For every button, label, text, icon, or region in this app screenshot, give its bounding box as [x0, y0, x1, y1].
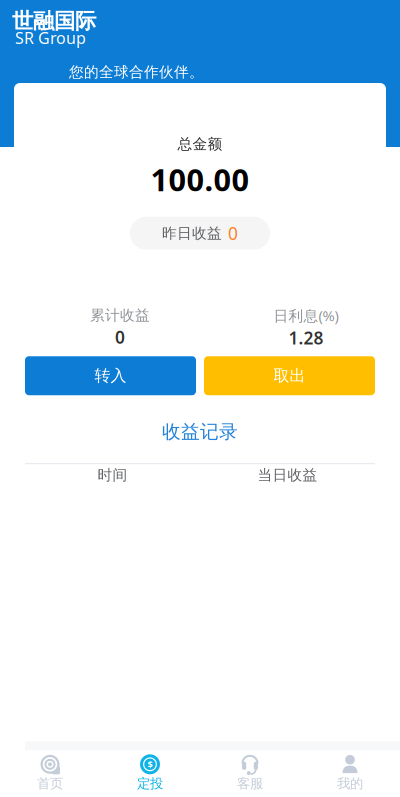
staticText: 0: [115, 325, 125, 348]
button[interactable]: 收益记录: [162, 395, 238, 463]
staticText: 日利息(%): [273, 306, 338, 325]
staticText: 客服: [237, 775, 263, 792]
staticText: 时间: [97, 466, 127, 484]
staticText: 收益记录: [162, 420, 238, 443]
staticText: 转入: [94, 366, 126, 386]
staticText: 取出: [273, 366, 305, 386]
staticText: 总金额: [177, 135, 222, 153]
button[interactable]: 取出: [204, 356, 375, 395]
staticText: 昨日收益: [162, 224, 222, 242]
staticText: 定投: [137, 775, 163, 792]
staticText: SR Group: [15, 27, 86, 48]
button[interactable]: 转入: [25, 356, 196, 395]
staticText: 累计收益: [90, 306, 150, 324]
staticText: 您的全球合作伙伴。: [69, 63, 204, 81]
staticText: 1.28: [288, 326, 323, 349]
staticText: 我的: [337, 775, 363, 792]
staticText: $: [147, 758, 152, 770]
button[interactable]: $: [100, 750, 200, 796]
staticText: 100.00: [150, 159, 249, 200]
staticText: 当日收益: [257, 466, 317, 484]
button[interactable]: 客服: [200, 750, 300, 796]
staticText: 首页: [37, 775, 63, 792]
staticText: 0: [228, 222, 238, 245]
staticText: 世融国际: [12, 8, 96, 34]
button[interactable]: 首页: [0, 750, 100, 796]
button[interactable]: 我的: [300, 750, 400, 796]
